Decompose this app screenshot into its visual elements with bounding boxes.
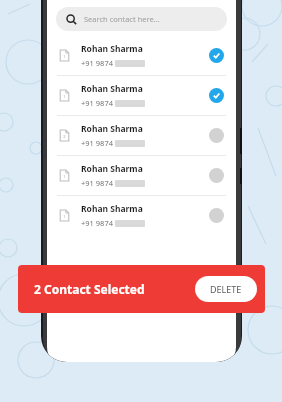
- staticText: +91 9874: [81, 138, 113, 148]
- staticText: Search contact here...: [84, 14, 160, 24]
- button[interactable]: Search contact here...: [56, 7, 227, 31]
- button[interactable]: 2: [47, 116, 236, 155]
- button[interactable]: 1: [47, 76, 236, 115]
- staticText: Rohan Sharma: [81, 43, 143, 55]
- staticText: 1: [63, 174, 66, 179]
- staticText: +91 9874: [81, 58, 113, 68]
- staticText: Rohan Sharma: [81, 83, 143, 95]
- button[interactable]: Selected: [209, 88, 224, 103]
- staticText: 1: [63, 94, 66, 99]
- button[interactable]: 1: [47, 156, 236, 195]
- button[interactable]: Not selected: [209, 208, 224, 223]
- staticText: Rohan Sharma: [81, 123, 143, 135]
- button[interactable]: Not selected: [209, 168, 224, 183]
- staticText: Rohan Sharma: [81, 163, 143, 175]
- staticText: 2 Contact Selected: [34, 281, 145, 297]
- staticText: +91 9874: [81, 178, 113, 188]
- staticText: +91 9874: [81, 98, 113, 108]
- staticText: Rohan Sharma: [81, 203, 143, 215]
- button[interactable]: Selected: [209, 48, 224, 63]
- staticText: 2: [63, 134, 66, 139]
- button[interactable]: DELETE: [195, 276, 257, 302]
- button[interactable]: 1: [47, 36, 236, 75]
- button[interactable]: 1: [47, 196, 236, 235]
- staticText: +91 9874: [81, 218, 113, 228]
- staticText: DELETE: [210, 283, 242, 295]
- button[interactable]: Not selected: [209, 128, 224, 143]
- staticText: 1: [63, 214, 66, 219]
- staticText: 1: [63, 54, 66, 59]
